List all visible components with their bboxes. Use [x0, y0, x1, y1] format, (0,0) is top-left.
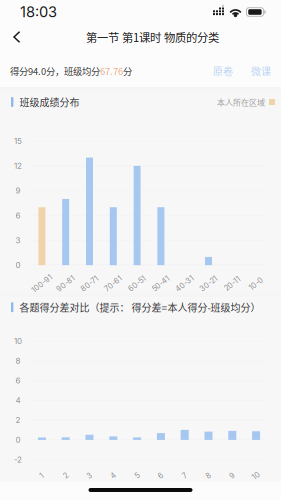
staticText: 10 — [252, 471, 260, 480]
staticText: 18:03 — [20, 3, 57, 21]
staticText: 班级成绩分布 — [19, 95, 79, 109]
staticText: 80-71 — [79, 279, 99, 288]
staticText: 8 — [206, 471, 211, 480]
staticText: 分 — [123, 64, 132, 78]
staticText: 20-11 — [223, 279, 241, 288]
staticText: 微课 — [251, 64, 271, 78]
staticText: 6 — [158, 471, 163, 480]
button[interactable]: 微课 — [246, 59, 276, 83]
staticText: 3 — [87, 471, 92, 480]
staticText: 67.76 — [100, 64, 123, 78]
staticText: 10-0 — [248, 279, 264, 288]
staticText: 1 — [40, 471, 43, 480]
button[interactable]: 原卷 — [208, 59, 238, 83]
staticText: 10 — [14, 336, 22, 346]
staticText: 3 — [15, 235, 20, 245]
staticText: -2 — [14, 455, 22, 465]
staticText: 0 — [15, 260, 20, 270]
button[interactable]: 返回 — [0, 24, 32, 50]
staticText: 2 — [15, 415, 20, 425]
staticText: 5 — [135, 471, 139, 480]
staticText: 7 — [183, 471, 187, 480]
staticText: 40-31 — [174, 279, 195, 288]
staticText: 9 — [15, 186, 20, 195]
staticText: 70-61 — [103, 279, 123, 288]
staticText: 15 — [14, 136, 22, 146]
staticText: 9 — [230, 471, 235, 480]
staticText: 12 — [14, 161, 22, 171]
staticText: 90-81 — [55, 279, 76, 288]
staticText: 6 — [15, 211, 20, 220]
staticText: 原卷 — [213, 64, 233, 78]
staticText: 4 — [111, 471, 116, 480]
staticText: 4 — [15, 396, 20, 405]
staticText: 得分94.0分，班级均分 — [10, 64, 100, 78]
staticText: 各题得分差对比（提示： 得分差=本人得分-班级均分） — [19, 300, 260, 314]
staticText: 2 — [64, 471, 68, 480]
staticText: 100-91 — [30, 279, 54, 288]
staticText: 8 — [15, 356, 20, 366]
staticText: 50-41 — [151, 279, 171, 288]
staticText: 第一节 第1课时 物质的分类 — [86, 29, 219, 45]
staticText: 0 — [15, 435, 20, 445]
staticText: 60-51 — [127, 279, 147, 288]
staticText: 30-21 — [198, 279, 218, 288]
staticText: 6 — [15, 376, 20, 386]
staticText: 本人所在区域 — [217, 96, 265, 108]
